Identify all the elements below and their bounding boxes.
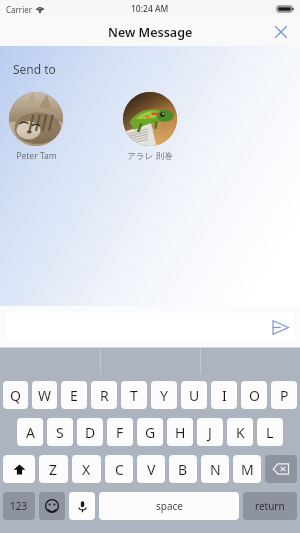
staticText: W: [38, 386, 52, 405]
staticText: アラレ 則巻: [127, 150, 173, 162]
button[interactable]: J: [197, 418, 223, 446]
staticText: X: [82, 460, 91, 479]
button[interactable]: Dictation: [69, 492, 95, 520]
staticText: Z: [49, 460, 58, 479]
staticText: G: [145, 423, 156, 442]
staticText: V: [147, 460, 156, 479]
button[interactable]: K: [227, 418, 253, 446]
button[interactable]: Z: [39, 455, 68, 483]
button[interactable]: U: [181, 381, 207, 409]
button[interactable]: L: [257, 418, 283, 446]
staticText: M: [241, 460, 254, 479]
staticText: space: [156, 499, 183, 513]
button[interactable]: X: [72, 455, 101, 483]
button[interactable]: W: [32, 381, 57, 409]
staticText: S: [56, 423, 64, 442]
staticText: K: [236, 423, 245, 442]
button[interactable]: Backspace: [265, 455, 297, 483]
staticText: D: [85, 423, 96, 442]
button[interactable]: F: [107, 418, 133, 446]
staticText: P: [280, 386, 289, 405]
staticText: Carrier: [6, 4, 33, 15]
staticText: L: [266, 423, 274, 442]
staticText: I: [222, 386, 227, 405]
staticText: H: [175, 423, 186, 442]
staticText: F: [116, 423, 124, 442]
staticText: J: [208, 423, 212, 442]
button[interactable]: アラレ 則巻: [112, 92, 188, 162]
button[interactable]: R: [91, 381, 117, 409]
button[interactable]: B: [169, 455, 197, 483]
button[interactable]: Y: [151, 381, 177, 409]
button[interactable]: return: [243, 492, 297, 520]
button[interactable]: C: [105, 455, 133, 483]
button[interactable]: P: [271, 381, 297, 409]
staticText: 123: [10, 499, 28, 513]
staticText: C: [115, 460, 124, 479]
button[interactable]: H: [167, 418, 193, 446]
staticText: O: [249, 386, 260, 405]
staticText: N: [210, 460, 221, 479]
button[interactable]: S: [47, 418, 73, 446]
staticText: E: [70, 386, 78, 405]
staticText: U: [189, 386, 200, 405]
staticText: Q: [10, 386, 21, 405]
button[interactable]: Emoji: [39, 492, 65, 520]
button[interactable]: A: [17, 418, 43, 446]
button[interactable]: [6, 313, 294, 341]
button[interactable]: space: [99, 492, 239, 520]
button[interactable]: Close: [268, 19, 294, 45]
button[interactable]: N: [201, 455, 229, 483]
button[interactable]: Q: [3, 381, 28, 409]
staticText: New Message: [108, 24, 193, 41]
button[interactable]: G: [137, 418, 163, 446]
button[interactable]: M: [233, 455, 261, 483]
button[interactable]: E: [61, 381, 87, 409]
staticText: return: [255, 499, 285, 513]
staticText: 10:24 AM: [131, 3, 169, 15]
staticText: T: [130, 386, 138, 405]
button[interactable]: V: [137, 455, 165, 483]
button[interactable]: D: [77, 418, 103, 446]
staticText: Peter Tam: [16, 150, 57, 162]
staticText: Y: [160, 386, 168, 405]
button[interactable]: Peter Tam: [8, 92, 64, 162]
staticText: R: [100, 386, 109, 405]
button[interactable]: I: [211, 381, 237, 409]
button[interactable]: Shift: [3, 455, 35, 483]
staticText: B: [178, 460, 188, 479]
staticText: Send to: [13, 61, 56, 77]
button[interactable]: 123: [3, 492, 35, 520]
button[interactable]: Send: [267, 314, 293, 340]
button[interactable]: T: [121, 381, 147, 409]
staticText: A: [26, 423, 35, 442]
button[interactable]: O: [241, 381, 267, 409]
